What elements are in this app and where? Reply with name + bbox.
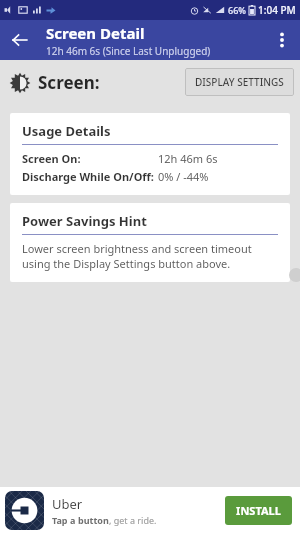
staticText: , get a ride. (109, 514, 157, 526)
staticText: Screen: (38, 71, 100, 94)
staticText: INSTALL (236, 503, 281, 518)
staticText: 66% (228, 4, 246, 16)
staticText: 12h 46m 6s (Since Last Unplugged) (46, 44, 211, 58)
staticText: Discharge While On/Off: (22, 169, 154, 184)
button[interactable]: INSTALL (225, 496, 292, 525)
staticText: Screen Detail (46, 23, 145, 43)
button[interactable]: DISPLAY SETTINGS (185, 68, 294, 96)
staticText: 0% / -44% (158, 169, 209, 184)
staticText: Usage Details (22, 122, 111, 140)
button[interactable]: Back (0, 20, 40, 60)
staticText: Tap a (52, 514, 78, 526)
staticText: 1:04 PM (258, 3, 296, 17)
staticText: button (78, 514, 109, 526)
staticText: Screen On: (22, 151, 81, 166)
button[interactable]: More options (264, 22, 300, 58)
staticText: Uber (52, 495, 83, 513)
staticText: Power Savings Hint (22, 212, 147, 230)
staticText: Lower screen brightness and screen timeo… (22, 241, 278, 271)
staticText: DISPLAY SETTINGS (195, 75, 284, 89)
button[interactable]: Uber (0, 487, 300, 534)
staticText: 12h 46m 6s (158, 151, 218, 166)
